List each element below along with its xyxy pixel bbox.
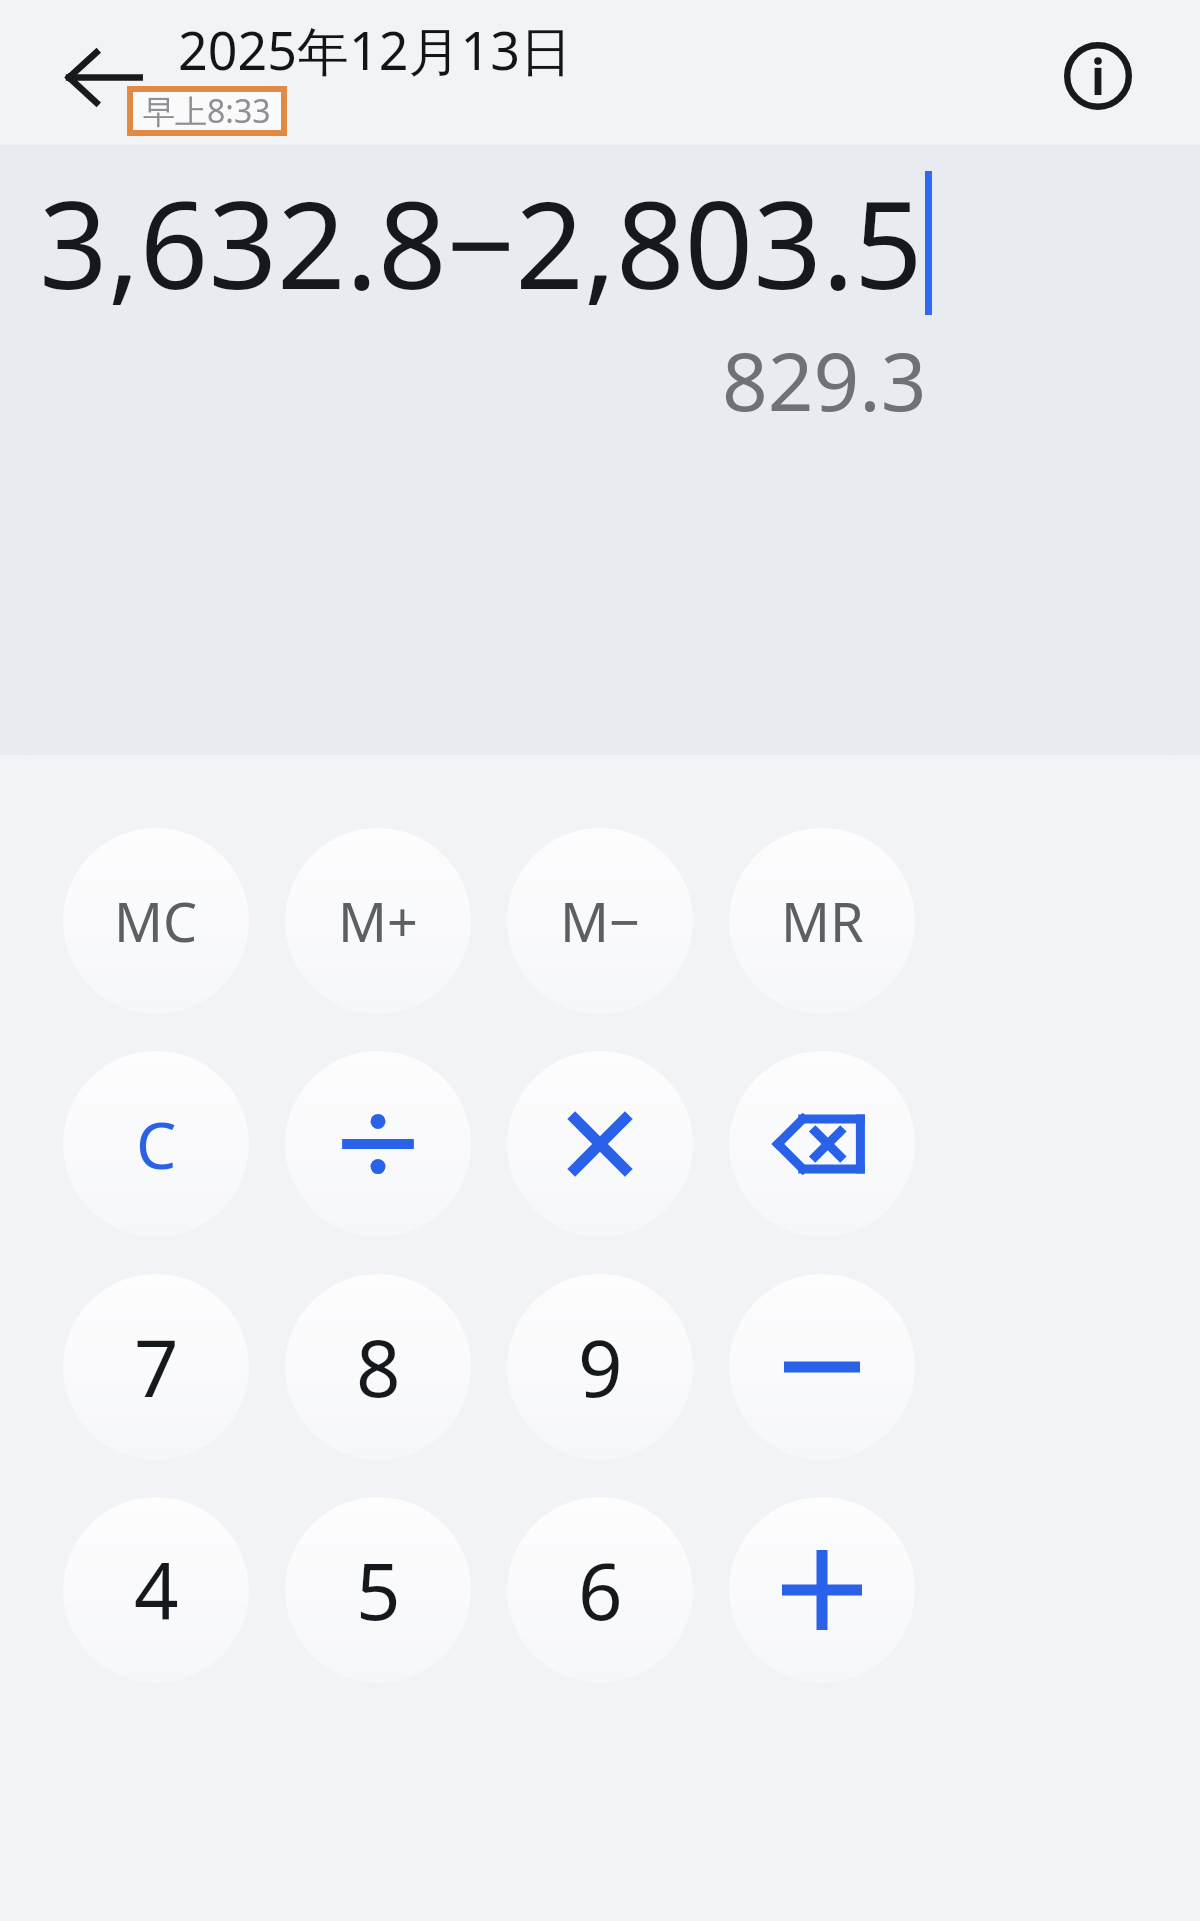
button[interactable]: Divide bbox=[285, 1051, 471, 1237]
staticText: MC bbox=[114, 884, 198, 958]
button[interactable]: 6 bbox=[507, 1497, 693, 1683]
staticText: 2025年12月13日 bbox=[178, 14, 572, 85]
staticText: C bbox=[136, 1101, 177, 1188]
button[interactable]: C bbox=[63, 1051, 249, 1237]
staticText: 5 bbox=[356, 1537, 401, 1643]
button[interactable]: Back bbox=[48, 20, 160, 132]
button[interactable]: MC bbox=[63, 828, 249, 1014]
button[interactable]: Backspace bbox=[729, 1051, 915, 1237]
button[interactable]: Minus bbox=[729, 1274, 915, 1460]
staticText: M− bbox=[560, 884, 640, 958]
button[interactable]: Multiply bbox=[507, 1051, 693, 1237]
button[interactable]: M− bbox=[507, 828, 693, 1014]
button[interactable]: MR bbox=[729, 828, 915, 1014]
button[interactable]: 8 bbox=[285, 1274, 471, 1460]
staticText: 6 bbox=[578, 1537, 623, 1643]
staticText: 4 bbox=[134, 1537, 179, 1643]
button[interactable]: 5 bbox=[285, 1497, 471, 1683]
staticText: 7 bbox=[134, 1314, 179, 1420]
button[interactable]: 7 bbox=[63, 1274, 249, 1460]
staticText: 9 bbox=[578, 1314, 623, 1420]
staticText: M+ bbox=[338, 884, 418, 958]
staticText: 8 bbox=[356, 1314, 401, 1420]
staticText: 早上8:33 bbox=[143, 89, 271, 133]
button[interactable]: Plus bbox=[729, 1497, 915, 1683]
staticText: MR bbox=[781, 884, 864, 958]
button[interactable]: M+ bbox=[285, 828, 471, 1014]
staticText: 829.3 bbox=[722, 325, 927, 434]
button[interactable]: 9 bbox=[507, 1274, 693, 1460]
button[interactable]: 4 bbox=[63, 1497, 249, 1683]
staticText: 3,632.8−2,803.5 bbox=[39, 161, 923, 324]
button[interactable]: Information bbox=[1042, 20, 1154, 132]
